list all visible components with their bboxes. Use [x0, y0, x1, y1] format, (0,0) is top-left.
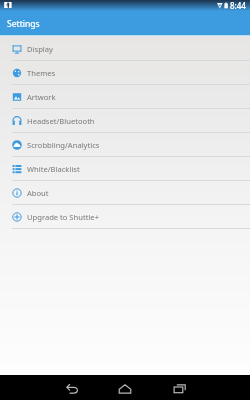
button[interactable]: Recents [151, 375, 250, 400]
staticText: Upgrade to Shuttle+ [27, 212, 99, 222]
button[interactable]: Artwork [0, 85, 250, 109]
staticText: Settings [7, 18, 40, 30]
staticText: Themes [27, 68, 56, 78]
staticText: Artwork [27, 92, 56, 102]
button[interactable]: White/Blacklist [0, 157, 250, 181]
button[interactable]: Display [0, 37, 250, 61]
staticText: Display [27, 44, 53, 54]
staticText: About [27, 188, 49, 198]
button[interactable]: About [0, 181, 250, 205]
button[interactable]: Headset/Bluetooth [0, 109, 250, 133]
button[interactable]: Back [0, 375, 98, 400]
button[interactable]: Upgrade to Shuttle+ [0, 205, 250, 229]
staticText: 8:44 [230, 0, 246, 11]
button[interactable]: Home [98, 375, 151, 400]
staticText: White/Blacklist [27, 164, 80, 174]
staticText: Scrobbling/Analytics [27, 140, 100, 150]
staticText: Headset/Bluetooth [27, 116, 95, 126]
button[interactable]: Themes [0, 61, 250, 85]
button[interactable]: Scrobbling/Analytics [0, 133, 250, 157]
